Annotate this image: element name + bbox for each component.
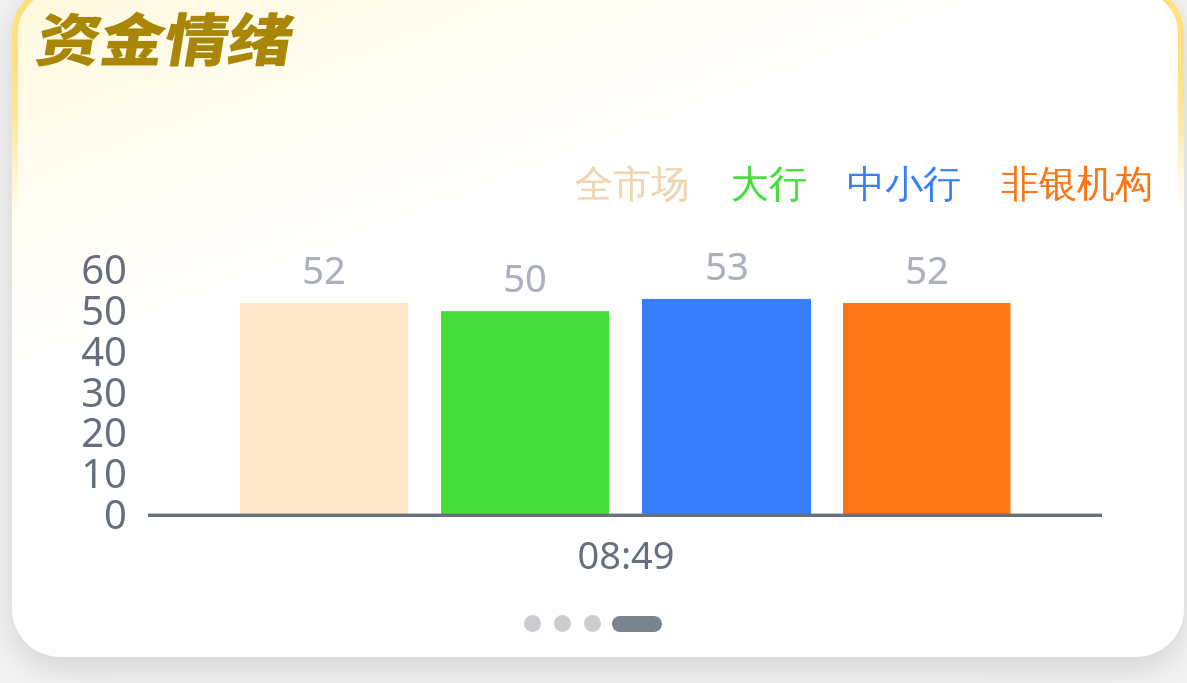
staticText: 30 xyxy=(57,364,127,418)
staticText: 20 xyxy=(57,404,127,458)
staticText: 非银机构 xyxy=(1001,160,1153,208)
button[interactable]: Page 1 xyxy=(524,615,541,632)
staticText: 50 xyxy=(475,251,575,303)
button[interactable]: 非银机构 xyxy=(1001,160,1153,208)
staticText: 大行 xyxy=(731,160,807,208)
staticText: 50 xyxy=(57,282,127,336)
staticText: 40 xyxy=(57,323,127,377)
staticText: 中小行 xyxy=(847,160,961,208)
staticText: 52 xyxy=(274,243,374,295)
staticText: 10 xyxy=(57,445,127,499)
button[interactable]: Page 4, current xyxy=(612,616,662,632)
button[interactable]: Page 3 xyxy=(584,615,601,632)
staticText: 0 xyxy=(57,486,127,540)
button[interactable]: 中小行 xyxy=(847,160,961,208)
staticText: 全市场 xyxy=(575,160,689,208)
staticText: 53 xyxy=(677,239,777,291)
button[interactable]: Page 2 xyxy=(554,615,571,632)
button[interactable]: 大行 xyxy=(731,160,807,208)
staticText: 08:49 xyxy=(576,528,676,580)
button[interactable]: 全市场 xyxy=(575,160,689,208)
staticText: 60 xyxy=(57,241,127,295)
staticText: 52 xyxy=(877,243,977,295)
button[interactable]: 资金情绪 xyxy=(30,8,304,68)
